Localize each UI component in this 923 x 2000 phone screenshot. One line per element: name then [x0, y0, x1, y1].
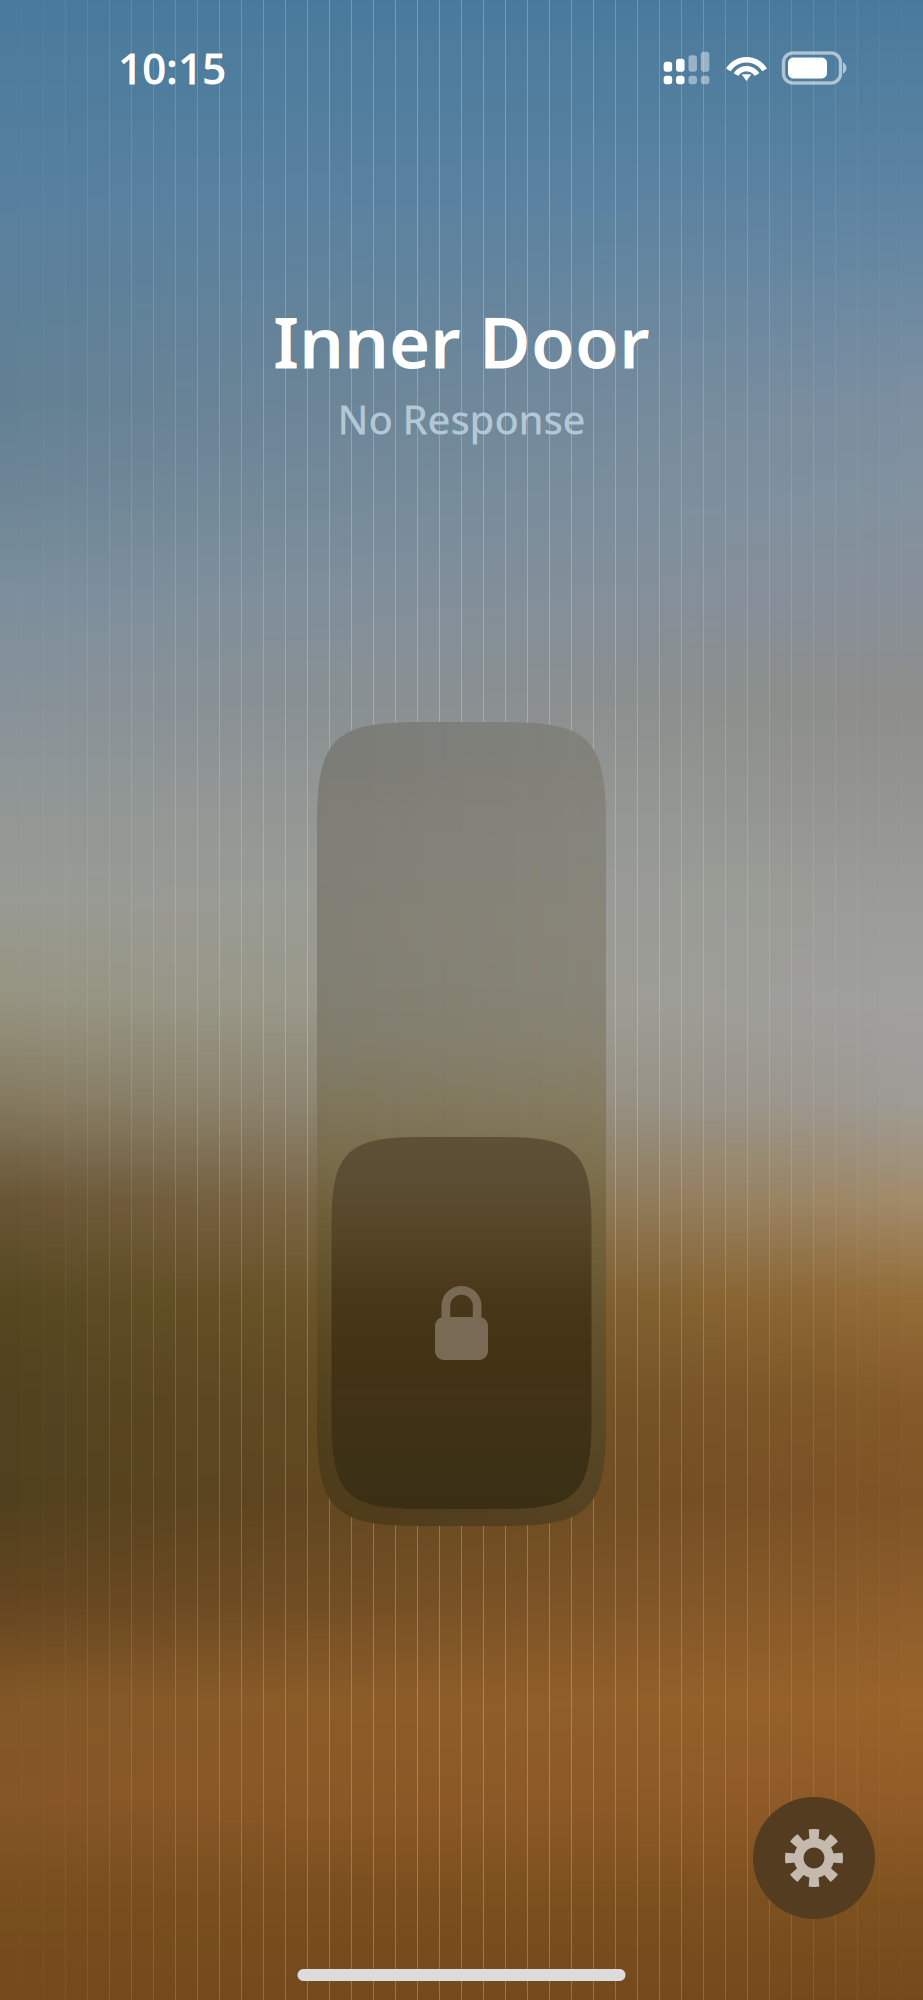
staticText: Inner Door [273, 294, 650, 388]
staticText: 10:15 [118, 40, 226, 96]
button[interactable]: Settings [753, 1797, 875, 1919]
staticText: No Response [337, 392, 585, 445]
